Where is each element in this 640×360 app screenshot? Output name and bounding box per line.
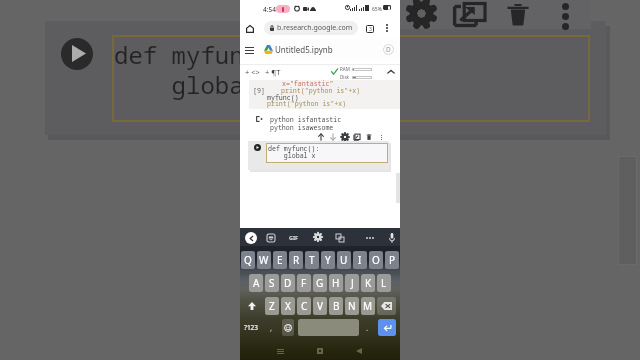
staticText: H — [332, 276, 340, 290]
staticText: myfunc() — [267, 93, 299, 102]
staticText: 65% — [372, 6, 382, 13]
button[interactable]: W — [257, 251, 271, 269]
staticText: R — [293, 253, 300, 267]
staticText: V — [317, 299, 323, 313]
button[interactable]: Run cell — [254, 144, 261, 151]
button[interactable]: E — [273, 251, 287, 269]
button[interactable]: F — [297, 274, 311, 292]
button[interactable]: N — [345, 297, 359, 315]
staticText: def myfunc(): — [114, 38, 302, 71]
staticText: D — [284, 276, 292, 290]
staticText: D — [386, 45, 391, 54]
staticText: global x — [114, 68, 287, 101]
staticText: T — [309, 253, 315, 267]
button[interactable]: Tabs — [364, 23, 375, 34]
staticText: python isawesome — [270, 123, 334, 132]
button[interactable]: I — [353, 251, 367, 269]
button[interactable]: Collapse toolbar — [387, 68, 395, 76]
button[interactable]: More — [366, 237, 374, 239]
button[interactable]: B — [329, 297, 343, 315]
button[interactable]: More options — [382, 23, 391, 32]
staticText: Untitled5.ipynb — [275, 44, 333, 55]
button[interactable]: Home — [314, 345, 326, 357]
button[interactable]: Space — [298, 319, 359, 336]
staticText: W — [259, 253, 269, 267]
button[interactable]: V — [313, 297, 327, 315]
button[interactable]: H — [329, 274, 343, 292]
staticText: print("python is"+x) — [281, 86, 361, 95]
button[interactable]: X — [281, 297, 295, 315]
button[interactable]: C — [297, 297, 311, 315]
staticText: RAM — [340, 66, 350, 72]
button[interactable]: + ¶T — [265, 67, 281, 77]
staticText: B — [333, 299, 340, 313]
staticText: L — [381, 276, 387, 290]
button[interactable]: Move down — [327, 131, 339, 143]
button[interactable]: Q — [241, 251, 255, 269]
button[interactable]: b.research.google.com — [264, 21, 358, 35]
staticText: Q — [244, 253, 252, 267]
button[interactable]: Keyboard settings — [314, 233, 322, 241]
staticText: N — [348, 299, 356, 313]
button[interactable]: Back — [353, 345, 365, 357]
button[interactable]: GIF — [289, 234, 299, 241]
staticText: print("python is"+x) — [267, 99, 347, 108]
button[interactable]: Emoji — [282, 319, 294, 336]
button[interactable]: Back — [245, 232, 257, 244]
button[interactable]: U — [337, 251, 351, 269]
button[interactable]: M — [361, 297, 375, 315]
staticText: O — [372, 253, 380, 267]
button[interactable]: Z — [265, 297, 279, 315]
button[interactable]: D — [281, 274, 295, 292]
staticText: X — [285, 299, 291, 313]
button[interactable]: L — [377, 274, 391, 292]
button[interactable]: O — [369, 251, 383, 269]
button[interactable]: Account — [383, 44, 394, 55]
button[interactable]: Stickers — [267, 234, 275, 242]
button[interactable]: Delete cell — [363, 131, 375, 143]
button[interactable]: Symbols — [241, 319, 262, 336]
button[interactable]: Settings — [339, 131, 351, 143]
button[interactable]: Enter — [378, 319, 396, 336]
staticText: G — [316, 276, 324, 290]
button[interactable]: Move up — [315, 131, 327, 143]
staticText: E — [277, 253, 283, 267]
staticText: python isfantastic — [270, 115, 342, 124]
button[interactable]: R — [289, 251, 303, 269]
button[interactable]: A — [249, 274, 263, 292]
staticText: 4:54 — [263, 5, 276, 14]
button[interactable]: P — [385, 251, 399, 269]
button[interactable]: Comma — [264, 319, 279, 336]
button[interactable]: Translate — [336, 234, 344, 242]
button[interactable]: More cell actions — [375, 131, 387, 143]
staticText: Disk — [340, 74, 350, 80]
button[interactable]: Shift — [242, 297, 262, 315]
staticText: J — [351, 276, 354, 290]
staticText: global x — [268, 151, 316, 160]
button[interactable]: S — [265, 274, 279, 292]
staticText: K — [365, 276, 372, 290]
staticText: . — [366, 322, 369, 333]
button[interactable]: K — [361, 274, 375, 292]
staticText: S — [269, 276, 275, 290]
button[interactable]: T — [305, 251, 319, 269]
button[interactable]: Home — [244, 23, 256, 35]
staticText: ?123 — [244, 323, 259, 332]
button[interactable]: Y — [321, 251, 335, 269]
button[interactable]: Voice input — [389, 233, 395, 243]
button[interactable]: Backspace — [377, 297, 396, 315]
button[interactable]: Menu — [242, 43, 256, 57]
staticText: M — [363, 299, 373, 313]
staticText: U — [340, 253, 348, 267]
button[interactable]: J — [345, 274, 359, 292]
staticText: A — [253, 276, 260, 290]
button[interactable]: Recents — [274, 345, 287, 358]
staticText: P — [389, 253, 396, 267]
button[interactable]: + <> — [245, 67, 260, 77]
button[interactable]: Period — [361, 319, 374, 336]
button[interactable]: Copy link — [351, 131, 363, 143]
staticText: F — [301, 276, 307, 290]
button[interactable]: G — [313, 274, 327, 292]
staticText: Z — [269, 299, 275, 313]
staticText: b.research.google.com — [277, 23, 353, 33]
